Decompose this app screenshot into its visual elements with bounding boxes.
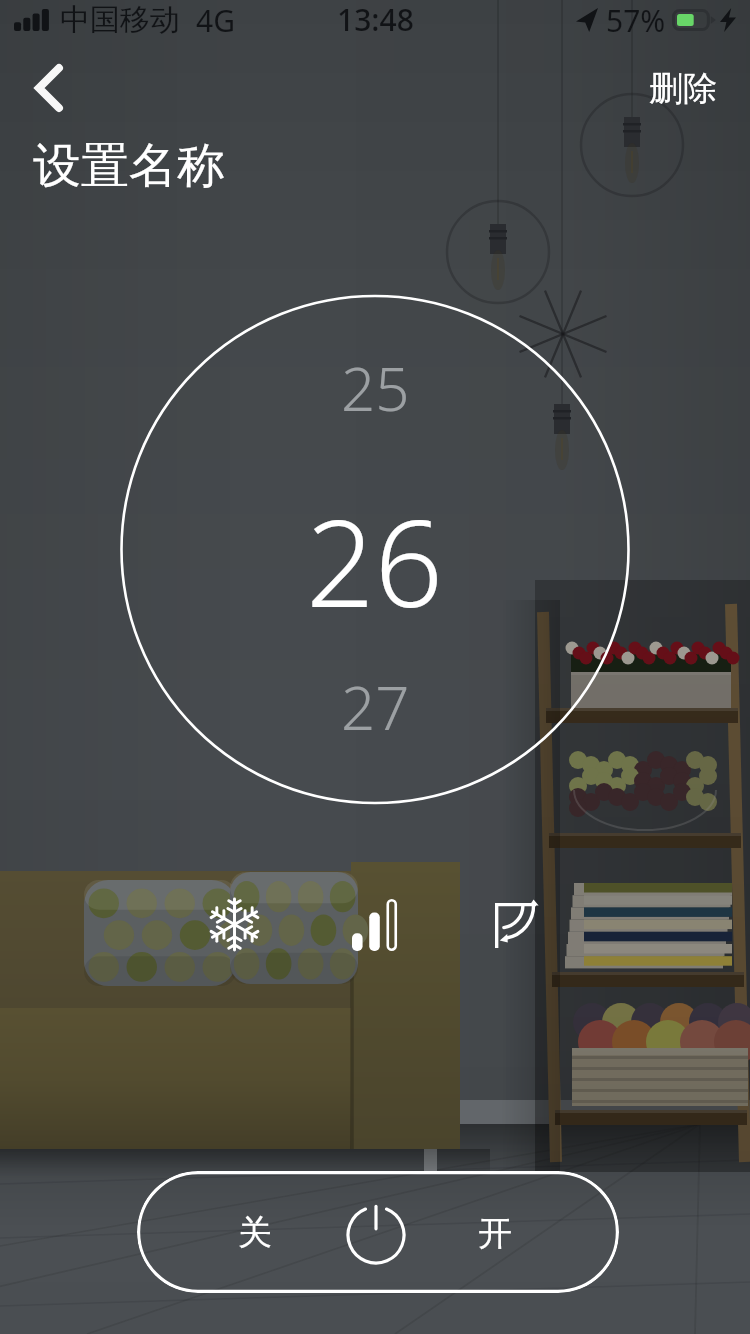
button[interactable]: 关 bbox=[196, 1183, 314, 1281]
button[interactable]: Power bbox=[321, 1180, 431, 1290]
button[interactable]: 删除 bbox=[627, 50, 738, 126]
staticText: 关 bbox=[238, 1211, 272, 1254]
staticText: 57% bbox=[606, 0, 666, 40]
button[interactable]: Fan speed bbox=[334, 884, 415, 965]
staticText: 13:48 bbox=[337, 0, 414, 39]
button[interactable]: Cool mode bbox=[194, 884, 275, 965]
staticText: 25 bbox=[341, 347, 410, 429]
staticText: 4G bbox=[196, 0, 235, 40]
staticText: 27 bbox=[341, 666, 410, 748]
staticText: 26 bbox=[306, 479, 444, 635]
staticText: 开 bbox=[478, 1212, 512, 1255]
button[interactable]: Back bbox=[14, 46, 84, 130]
staticText: 中国移动 bbox=[60, 1, 180, 39]
staticText: 删除 bbox=[649, 67, 717, 110]
button[interactable]: Swing bbox=[475, 885, 555, 965]
staticText: 设置名称 bbox=[33, 136, 225, 196]
button[interactable]: 开 bbox=[436, 1184, 554, 1282]
